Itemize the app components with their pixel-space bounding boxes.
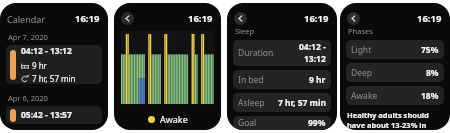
staticText: 8% [426,67,439,79]
button[interactable]: Awake [346,86,444,105]
staticText: Light [351,44,372,56]
staticText: Asleep [238,97,265,109]
staticText: In bed [238,74,264,86]
button[interactable]: Duration [233,40,331,66]
staticText: 16:19 [188,12,213,25]
staticText: Phases [348,26,373,36]
staticText: Calendar [7,13,45,25]
staticText: 99% [308,117,326,129]
button[interactable]: In bed [233,70,331,89]
staticText: Awake [351,90,378,102]
staticText: 16:19 [304,12,329,25]
staticText: Awake [160,113,188,125]
staticText: 04:12 - [299,41,326,53]
staticText: 05:42 - 13:57 [21,109,72,121]
staticText: Duration [238,47,274,59]
button[interactable]: Back [347,12,360,25]
staticText: Sleep [235,26,255,36]
button[interactable]: Back [121,12,134,25]
button[interactable]: Awake [114,108,221,130]
staticText: 75% [421,44,439,56]
staticText: 9 hr [32,60,47,71]
button[interactable]: 04:12 - 13:12 [6,45,102,84]
button[interactable]: 05:42 - 13:57 [6,106,102,124]
staticText: Apr 6, 2020 [8,93,48,103]
button[interactable]: Back [234,12,247,25]
staticText: Healthy adults should have about 13-23% … [347,110,429,130]
staticText: 18% [421,90,439,102]
staticText: 16:19 [75,12,100,25]
button[interactable]: Light [346,40,444,59]
staticText: Deep [351,67,373,79]
staticText: 16:19 [417,12,442,25]
staticText: 9 hr [309,74,326,86]
button[interactable]: Deep [346,63,444,82]
staticText: 7 hr, 57 min [32,73,76,84]
staticText: 7 hr, 57 min [278,97,326,109]
button[interactable]: Goal [233,116,331,130]
staticText: Goal [238,117,257,129]
staticText: 13:12 [304,53,326,65]
staticText: 04:12 - 13:12 [21,45,72,57]
button[interactable]: Asleep [233,93,331,112]
staticText: Apr 7, 2020 [8,32,48,42]
